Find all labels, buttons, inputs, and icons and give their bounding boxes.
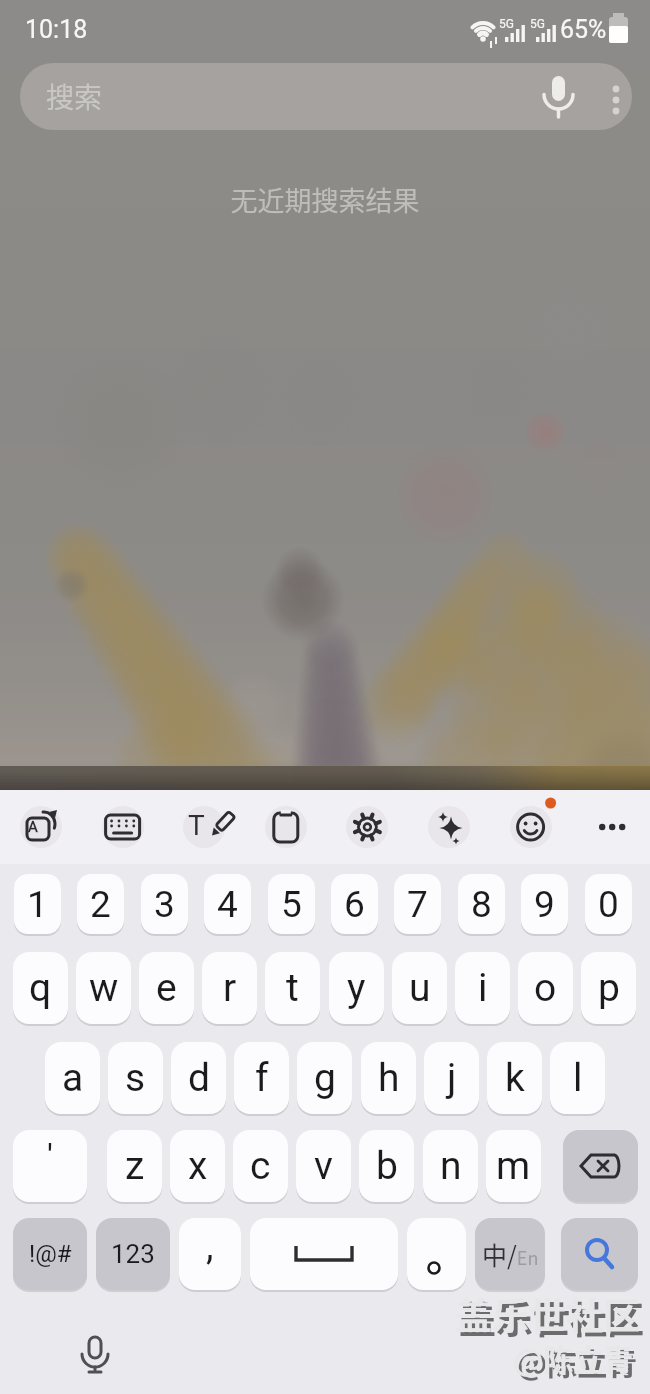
button[interactable]: z (107, 1130, 162, 1202)
button[interactable]: 1 (14, 874, 61, 934)
button[interactable]: 0 (585, 874, 632, 934)
staticText: @陈立青 (513, 1336, 634, 1379)
button[interactable]: 5 (268, 874, 315, 934)
button[interactable]: p (581, 952, 636, 1024)
button[interactable]: 4 (204, 874, 251, 934)
staticText: 3 (154, 883, 175, 926)
button[interactable]: ' (13, 1130, 87, 1202)
staticText: @陈立青 (517, 1340, 638, 1383)
staticText: 0 (598, 883, 619, 926)
button[interactable]: w (76, 952, 131, 1024)
staticText: 65% (560, 15, 607, 44)
button[interactable]: 123 (96, 1218, 170, 1290)
staticText: z (125, 1143, 145, 1189)
staticText: 4 (217, 883, 238, 926)
staticText: b (376, 1143, 398, 1189)
button[interactable] (20, 806, 62, 848)
staticText: 10:18 (25, 15, 88, 44)
staticText: 搜索 (46, 76, 103, 117)
button[interactable] (250, 1218, 398, 1290)
staticText: T (188, 809, 205, 842)
staticText: s (125, 1055, 146, 1101)
button[interactable]: m (486, 1130, 541, 1202)
button[interactable]: k (487, 1042, 542, 1114)
staticText: 5G (530, 17, 545, 31)
button[interactable] (102, 806, 144, 848)
button[interactable]: 搜索 (20, 63, 632, 130)
button[interactable] (183, 806, 225, 848)
staticText: t (286, 965, 299, 1011)
button[interactable]: b (359, 1130, 414, 1202)
button[interactable]: q (13, 952, 68, 1024)
button[interactable] (591, 806, 633, 848)
button[interactable] (563, 1130, 638, 1202)
button[interactable]: v (296, 1130, 351, 1202)
button[interactable] (510, 806, 552, 848)
staticText: 123 (111, 1239, 155, 1269)
button[interactable]: c (233, 1130, 288, 1202)
staticText: , (206, 1224, 214, 1269)
button[interactable]: 2 (77, 874, 124, 934)
button[interactable]: h (361, 1042, 416, 1114)
staticText: w (89, 965, 119, 1011)
button[interactable] (407, 1218, 466, 1290)
button[interactable]: s (108, 1042, 163, 1114)
staticText: x (188, 1143, 208, 1189)
button[interactable]: 中/En (475, 1218, 545, 1290)
staticText: y (347, 965, 366, 1011)
staticText: 盖乐世社区 (455, 1287, 640, 1341)
staticText: u (409, 965, 431, 1011)
button[interactable] (561, 1218, 638, 1290)
button[interactable]: n (423, 1130, 478, 1202)
button[interactable]: l (550, 1042, 605, 1114)
button[interactable]: o (518, 952, 573, 1024)
button[interactable]: a (45, 1042, 100, 1114)
button[interactable]: f (234, 1042, 289, 1114)
button[interactable]: t (265, 952, 320, 1024)
button[interactable]: !@# (13, 1218, 87, 1290)
staticText: i (478, 965, 488, 1011)
button[interactable]: i (455, 952, 510, 1024)
staticText: 盖乐世社区 (459, 1291, 644, 1345)
staticText: r (223, 965, 237, 1011)
button[interactable]: j (424, 1042, 479, 1114)
button[interactable]: 9 (521, 874, 568, 934)
button[interactable]: 8 (458, 874, 505, 934)
button[interactable]: , (179, 1218, 241, 1290)
button[interactable]: x (170, 1130, 225, 1202)
staticText: j (447, 1055, 457, 1101)
staticText: m (496, 1143, 531, 1189)
staticText: 中/En (482, 1236, 539, 1272)
staticText: 5G (499, 17, 514, 31)
staticText: q (29, 965, 52, 1011)
staticText: n (440, 1143, 462, 1189)
button[interactable] (428, 806, 470, 848)
staticText: 9 (534, 883, 555, 926)
staticText: h (378, 1055, 400, 1101)
staticText: e (156, 965, 177, 1011)
button[interactable] (346, 806, 388, 848)
button[interactable] (80, 1335, 110, 1375)
button[interactable] (265, 806, 307, 848)
staticText: 5 (281, 883, 302, 926)
staticText: 1 (27, 883, 48, 926)
button[interactable]: r (202, 952, 257, 1024)
button[interactable]: y (329, 952, 384, 1024)
staticText: 7 (407, 883, 428, 926)
staticText: k (505, 1055, 525, 1101)
button[interactable]: e (139, 952, 194, 1024)
staticText: g (314, 1055, 336, 1101)
staticText: a (62, 1055, 84, 1101)
button[interactable]: d (171, 1042, 226, 1114)
button[interactable]: 7 (394, 874, 441, 934)
staticText: !@# (29, 1240, 72, 1268)
button[interactable]: 3 (141, 874, 188, 934)
staticText: 2 (90, 883, 111, 926)
staticText: 6 (344, 883, 365, 926)
staticText: 无近期搜索结果 (0, 180, 650, 219)
staticText: A (28, 818, 38, 836)
button[interactable]: 6 (331, 874, 378, 934)
button[interactable]: u (392, 952, 447, 1024)
staticText: o (534, 965, 557, 1011)
button[interactable]: g (297, 1042, 352, 1114)
